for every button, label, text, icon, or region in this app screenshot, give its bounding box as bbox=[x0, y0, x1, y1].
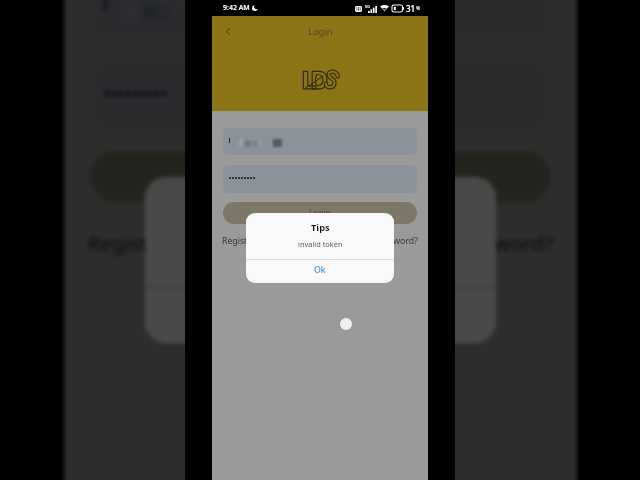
staticText: Tips bbox=[311, 221, 330, 234]
staticText: Ok bbox=[314, 264, 326, 276]
button[interactable]: Login bbox=[223, 202, 417, 224]
staticText: forgot password? bbox=[347, 235, 418, 247]
staticText: 9:42 AM bbox=[223, 3, 250, 13]
button[interactable]: Ok bbox=[246, 260, 394, 283]
staticText: Register bbox=[222, 235, 256, 247]
staticText: % bbox=[416, 5, 421, 12]
staticText: Register bbox=[88, 229, 169, 258]
button[interactable]: Back bbox=[217, 21, 238, 42]
button[interactable]: forgot password? bbox=[347, 235, 418, 247]
staticText: forgot password? bbox=[385, 229, 553, 258]
staticText: 31 bbox=[406, 3, 416, 14]
staticText: invalid token bbox=[268, 239, 375, 262]
staticText: Login bbox=[309, 207, 331, 218]
staticText: invalid token bbox=[298, 239, 343, 249]
button[interactable]: Register bbox=[222, 235, 256, 247]
button[interactable] bbox=[223, 128, 417, 155]
staticText: Login bbox=[294, 163, 347, 189]
staticText: Tips bbox=[299, 196, 344, 227]
staticText: 5G bbox=[365, 4, 371, 9]
button[interactable] bbox=[223, 165, 417, 193]
staticText: Login bbox=[308, 25, 333, 38]
